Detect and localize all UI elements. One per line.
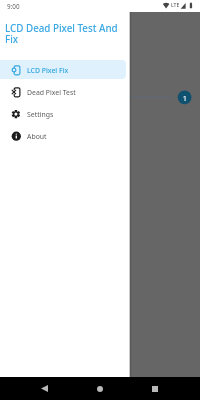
staticText: Settings [27, 110, 54, 119]
staticText: Dead Pixel Test [27, 88, 76, 97]
staticText: About [27, 132, 47, 141]
button[interactable]: Back [33, 377, 55, 400]
staticText: LCD Dead Pixel Test And Fix [5, 22, 123, 46]
button[interactable]: About [0, 126, 126, 145]
staticText: 1 [183, 94, 187, 103]
button[interactable]: Settings [0, 104, 126, 123]
button[interactable]: LCD Pixel Fix [0, 60, 126, 79]
button[interactable]: Recent apps [144, 377, 166, 400]
button[interactable]: Dead Pixel Test [0, 82, 126, 101]
staticText: LTE [171, 2, 180, 9]
button[interactable]: Home [89, 377, 111, 400]
staticText: LCD Pixel Fix [27, 66, 69, 75]
staticText: 9:00 [7, 2, 20, 11]
